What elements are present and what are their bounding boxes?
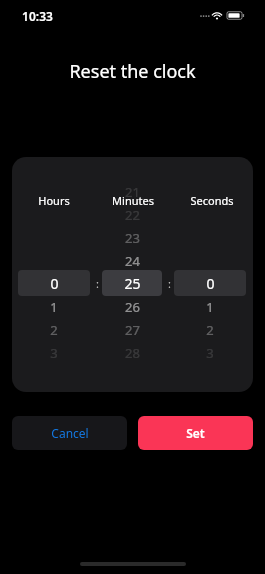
- staticText: :: [168, 276, 171, 291]
- staticText: 1: [50, 298, 58, 316]
- staticText: Set: [186, 425, 205, 441]
- staticText: :: [96, 276, 99, 291]
- staticText: Seconds: [190, 193, 234, 208]
- staticText: 25: [124, 274, 141, 293]
- staticText: 2: [50, 321, 58, 339]
- button[interactable]: Set: [138, 416, 253, 450]
- staticText: 2: [206, 321, 214, 339]
- staticText: 10:33: [22, 8, 53, 24]
- staticText: 3: [50, 344, 58, 362]
- staticText: Minutes: [112, 193, 154, 208]
- staticText: 28: [125, 344, 140, 362]
- staticText: Hours: [38, 193, 70, 208]
- staticText: Reset the clock: [69, 59, 196, 84]
- staticText: 22: [125, 206, 140, 224]
- staticText: Cancel: [51, 425, 89, 441]
- button[interactable]: Hours: [18, 270, 90, 296]
- staticText: 3: [206, 344, 214, 362]
- button[interactable]: Seconds: [174, 270, 246, 296]
- button[interactable]: Cancel: [12, 416, 127, 450]
- staticText: 1: [206, 298, 214, 316]
- staticText: 27: [125, 321, 140, 339]
- staticText: 0: [50, 274, 59, 293]
- staticText: 0: [206, 274, 215, 293]
- staticText: 21: [125, 183, 140, 201]
- staticText: 23: [125, 229, 140, 247]
- staticText: 24: [125, 252, 140, 270]
- staticText: 26: [125, 298, 140, 316]
- button[interactable]: Minutes: [102, 270, 162, 296]
